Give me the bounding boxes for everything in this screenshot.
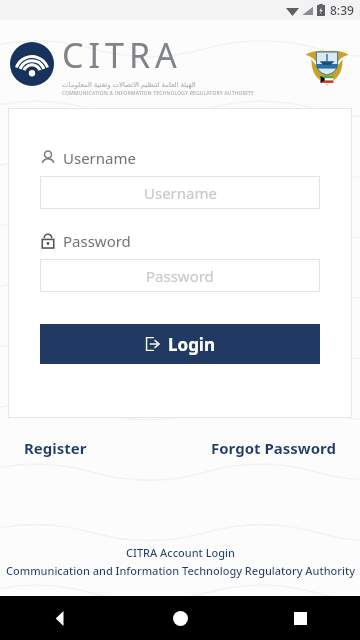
button[interactable]: Forgot Password bbox=[207, 434, 340, 462]
staticText: Forgot Password bbox=[211, 438, 336, 458]
staticText: الهيئة العامة لتنظيم الاتصالات وتقنية ال… bbox=[62, 80, 196, 90]
button[interactable]: Back bbox=[0, 596, 120, 640]
staticText: Username bbox=[63, 148, 136, 168]
button[interactable]: Login bbox=[40, 324, 320, 364]
button[interactable]: Password bbox=[40, 259, 320, 292]
staticText: Register bbox=[24, 438, 87, 458]
staticText: Communication and Information Technology… bbox=[6, 563, 355, 578]
staticText: CITRA Account Login bbox=[126, 545, 235, 560]
staticText: CITRA bbox=[62, 32, 182, 78]
staticText: Password bbox=[146, 266, 214, 286]
staticText: Login bbox=[168, 333, 216, 356]
staticText: COMMUNICATION & INFORMATION TECHNOLOGY R… bbox=[62, 90, 254, 97]
staticText: Username bbox=[144, 183, 217, 203]
button[interactable]: Home bbox=[120, 596, 240, 640]
button[interactable]: Username bbox=[40, 176, 320, 209]
staticText: 8:39 bbox=[330, 2, 354, 18]
button[interactable]: Register bbox=[20, 434, 91, 462]
button[interactable]: Recent apps bbox=[240, 596, 360, 640]
staticText: Password bbox=[63, 231, 131, 251]
